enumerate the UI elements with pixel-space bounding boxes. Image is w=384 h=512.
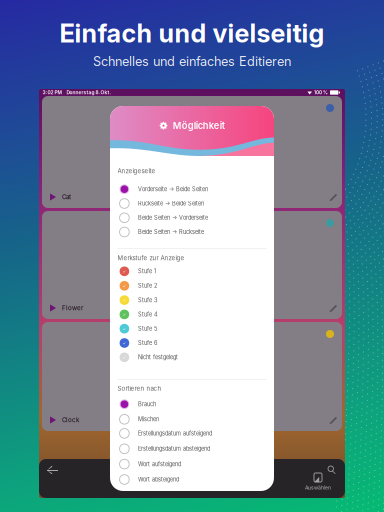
button[interactable]: Stufe 6 [110,336,274,350]
staticText: Anzeigeseite [117,167,155,175]
staticText: Vorderseite → Beide Seiten [138,186,208,193]
button[interactable]: Clock [42,322,342,431]
button[interactable]: Alle wiedergeben [152,459,192,491]
staticText: 100 % [314,90,328,95]
staticText: Clock [62,416,79,424]
staticText: Erstellungsdatum aufsteigend [138,430,212,437]
button[interactable]: Wort aufsteigend [110,457,274,471]
staticText: Mischen [138,416,159,423]
staticText: Nicht festgelegt [138,354,178,361]
staticText: Beide Seiten → Vorderseite [138,214,208,221]
button[interactable]: Stufe 1 [110,264,274,278]
button[interactable]: Erstellungsdatum absteigend [110,442,274,456]
staticText: Merkstufe zur Anzeige [117,254,184,262]
staticText: Brauch [138,401,156,408]
staticText: Stufe 5 [138,325,157,332]
staticText: Stufe 1 [138,268,156,275]
staticText: Möglichkeit [173,120,225,131]
button[interactable]: Auswählen [305,459,337,491]
button[interactable]: Beide Seiten → Rückseite [110,225,274,239]
staticText: Auswählen [305,484,331,491]
staticText: Stufe 2 [138,282,157,289]
staticText: Sortieren nach [117,385,161,392]
staticText: Stufe 6 [138,340,157,346]
button[interactable]: Flower [42,211,342,319]
staticText: Stufe 4 [138,311,158,318]
staticText: Cat [62,193,71,201]
button[interactable]: Stufe 5 [110,322,274,336]
staticText: Wort absteigend [138,476,179,483]
button[interactable]: Nicht festgelegt [110,350,274,364]
staticText: Einfach und vielseitig [59,18,324,49]
staticText: Donnerstag 8. Okt. [66,90,111,95]
button[interactable]: Brauch [110,397,274,411]
button[interactable]: Suchen [328,459,345,474]
button[interactable]: Stufe 3 [110,293,274,307]
staticText: Wort aufsteigend [138,461,181,467]
button[interactable]: Beide Seiten → Vorderseite [110,211,274,225]
button[interactable]: Rückseite → Beide Seiten [110,196,274,211]
button[interactable]: Vorderseite → Beide Seiten [110,182,274,196]
staticText: Rückseite → Beide Seiten [138,200,204,207]
button[interactable]: Erstellungsdatum aufsteigend [110,426,274,440]
button[interactable]: Mischen [110,412,274,426]
staticText: 3:02 PM [42,90,61,95]
staticText: Schnelles und einfaches Editieren [93,54,291,69]
button[interactable]: Zurück [39,459,58,474]
button[interactable]: Cat [42,96,342,208]
button[interactable]: Stufe 4 [110,307,274,321]
button[interactable]: Wort absteigend [110,472,274,487]
staticText: Stufe 3 [138,297,157,303]
staticText: Beide Seiten → Rückseite [138,229,204,235]
staticText: Flower [62,304,83,312]
staticText: Erstellungsdatum absteigend [138,445,210,452]
button[interactable]: Stufe 2 [110,279,274,293]
